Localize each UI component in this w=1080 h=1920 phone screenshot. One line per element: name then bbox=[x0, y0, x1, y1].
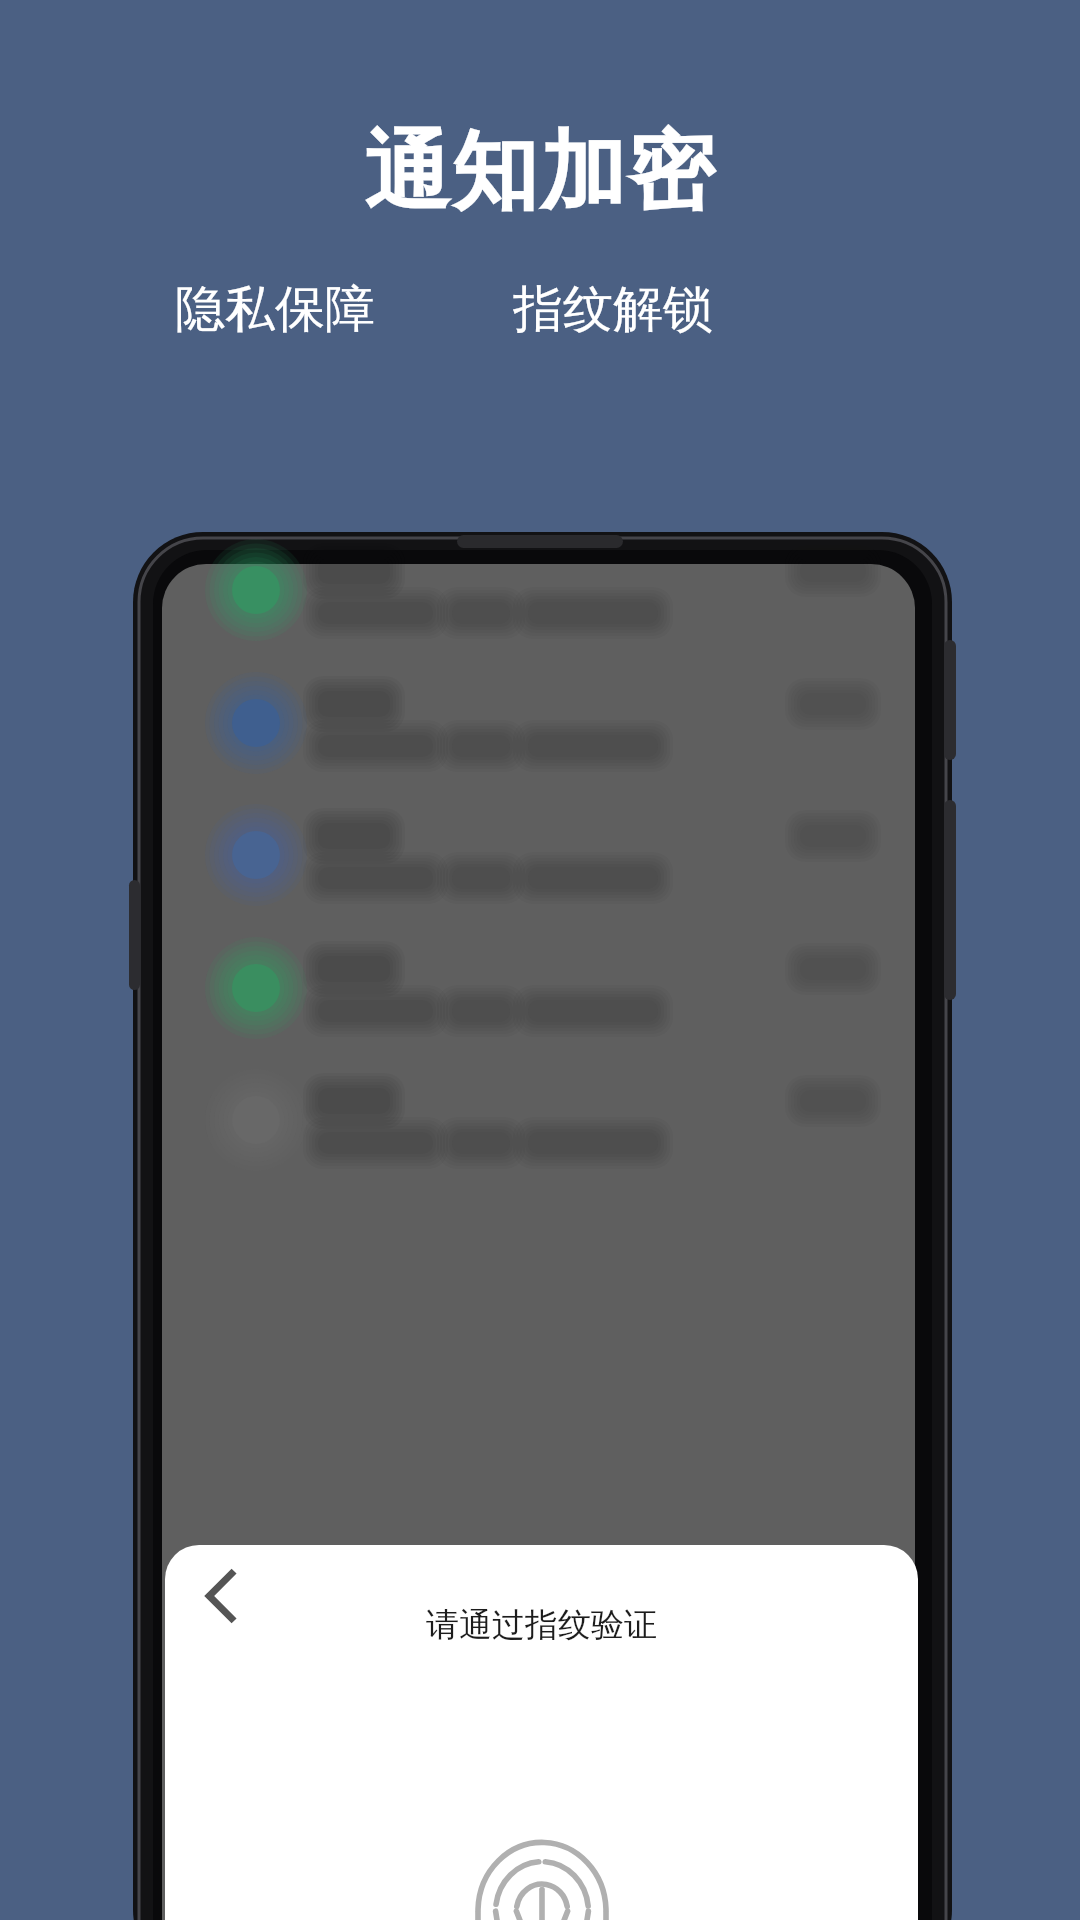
staticText: 隐私保障 bbox=[140, 278, 410, 341]
staticText: 指纹解锁 bbox=[478, 278, 748, 341]
staticText: 通知加密 bbox=[0, 118, 1080, 226]
button[interactable]: Fingerprint bbox=[462, 1812, 622, 1920]
button[interactable]: Back bbox=[182, 1556, 262, 1636]
staticText: 请通过指纹验证 bbox=[165, 1604, 918, 1646]
